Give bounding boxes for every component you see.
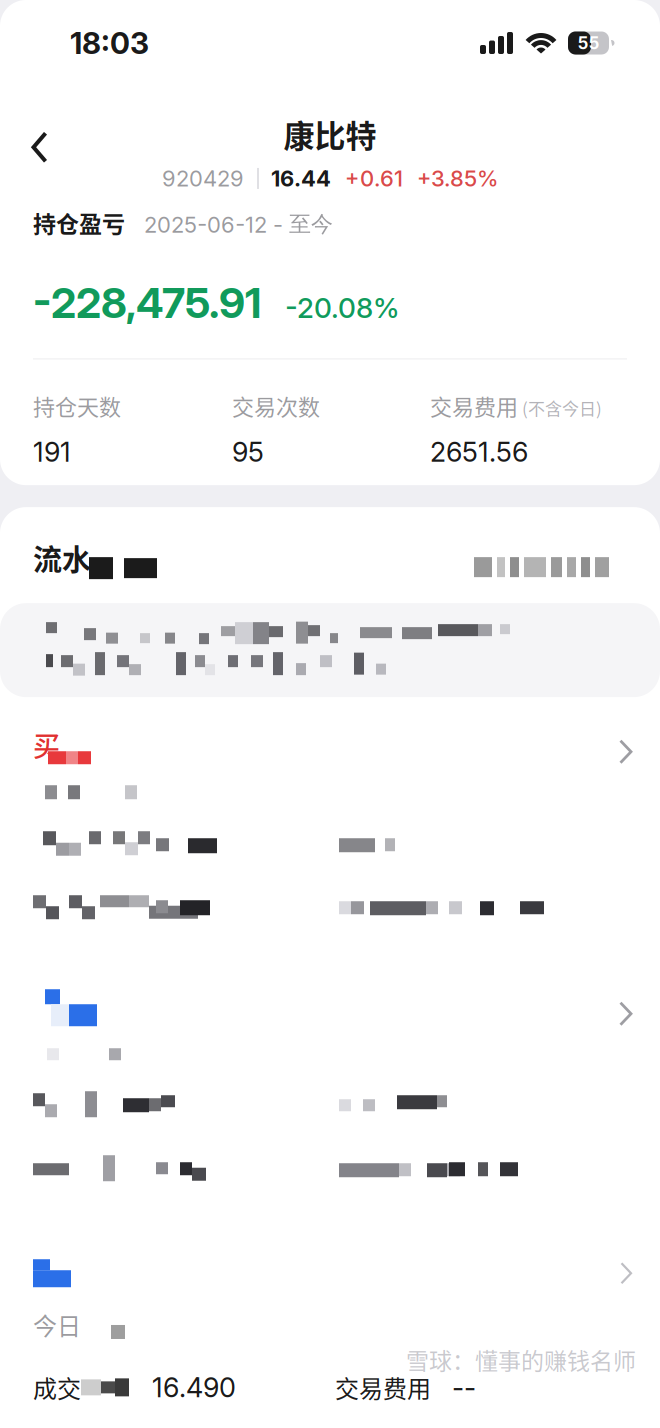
staticText: 买 (33, 725, 60, 764)
staticText: 雪球：懂事的赚钱名师 (406, 1343, 636, 1376)
button[interactable]: 今日 (0, 1223, 660, 1428)
staticText: 交易费用 (430, 390, 518, 421)
staticText: 2025-06-12 - 至今 (144, 210, 333, 238)
staticText: 920429 (162, 165, 244, 192)
button[interactable] (0, 961, 660, 1223)
staticText: 流水 (33, 537, 91, 579)
staticText: -228,475.91 (33, 277, 261, 328)
staticText: 持仓盈亏 (33, 206, 125, 239)
staticText: 16.44 (271, 165, 331, 192)
staticText: 191 (33, 435, 71, 468)
staticText: 成交 (33, 1370, 81, 1405)
staticText: +0.61 (345, 165, 403, 192)
staticText: 16.490 (152, 1371, 236, 1404)
staticText: 今日 (33, 1307, 81, 1342)
staticText: 18:03 (70, 25, 149, 61)
staticText: +3.85% (417, 165, 498, 192)
staticText: 2651.56 (430, 435, 528, 468)
staticText: 55 (577, 33, 599, 53)
staticText: 持仓天数 (33, 390, 121, 421)
staticText: 交易费用 (335, 1370, 431, 1405)
staticText: -- (452, 1371, 476, 1404)
staticText: 95 (232, 435, 264, 468)
staticText: (不含今日) (522, 395, 602, 420)
staticText: -20.08% (285, 291, 400, 325)
staticText: 交易次数 (232, 390, 320, 421)
staticText: 康比特 (283, 111, 376, 156)
button[interactable]: Back (9, 116, 71, 178)
button[interactable]: 买 (0, 697, 660, 961)
